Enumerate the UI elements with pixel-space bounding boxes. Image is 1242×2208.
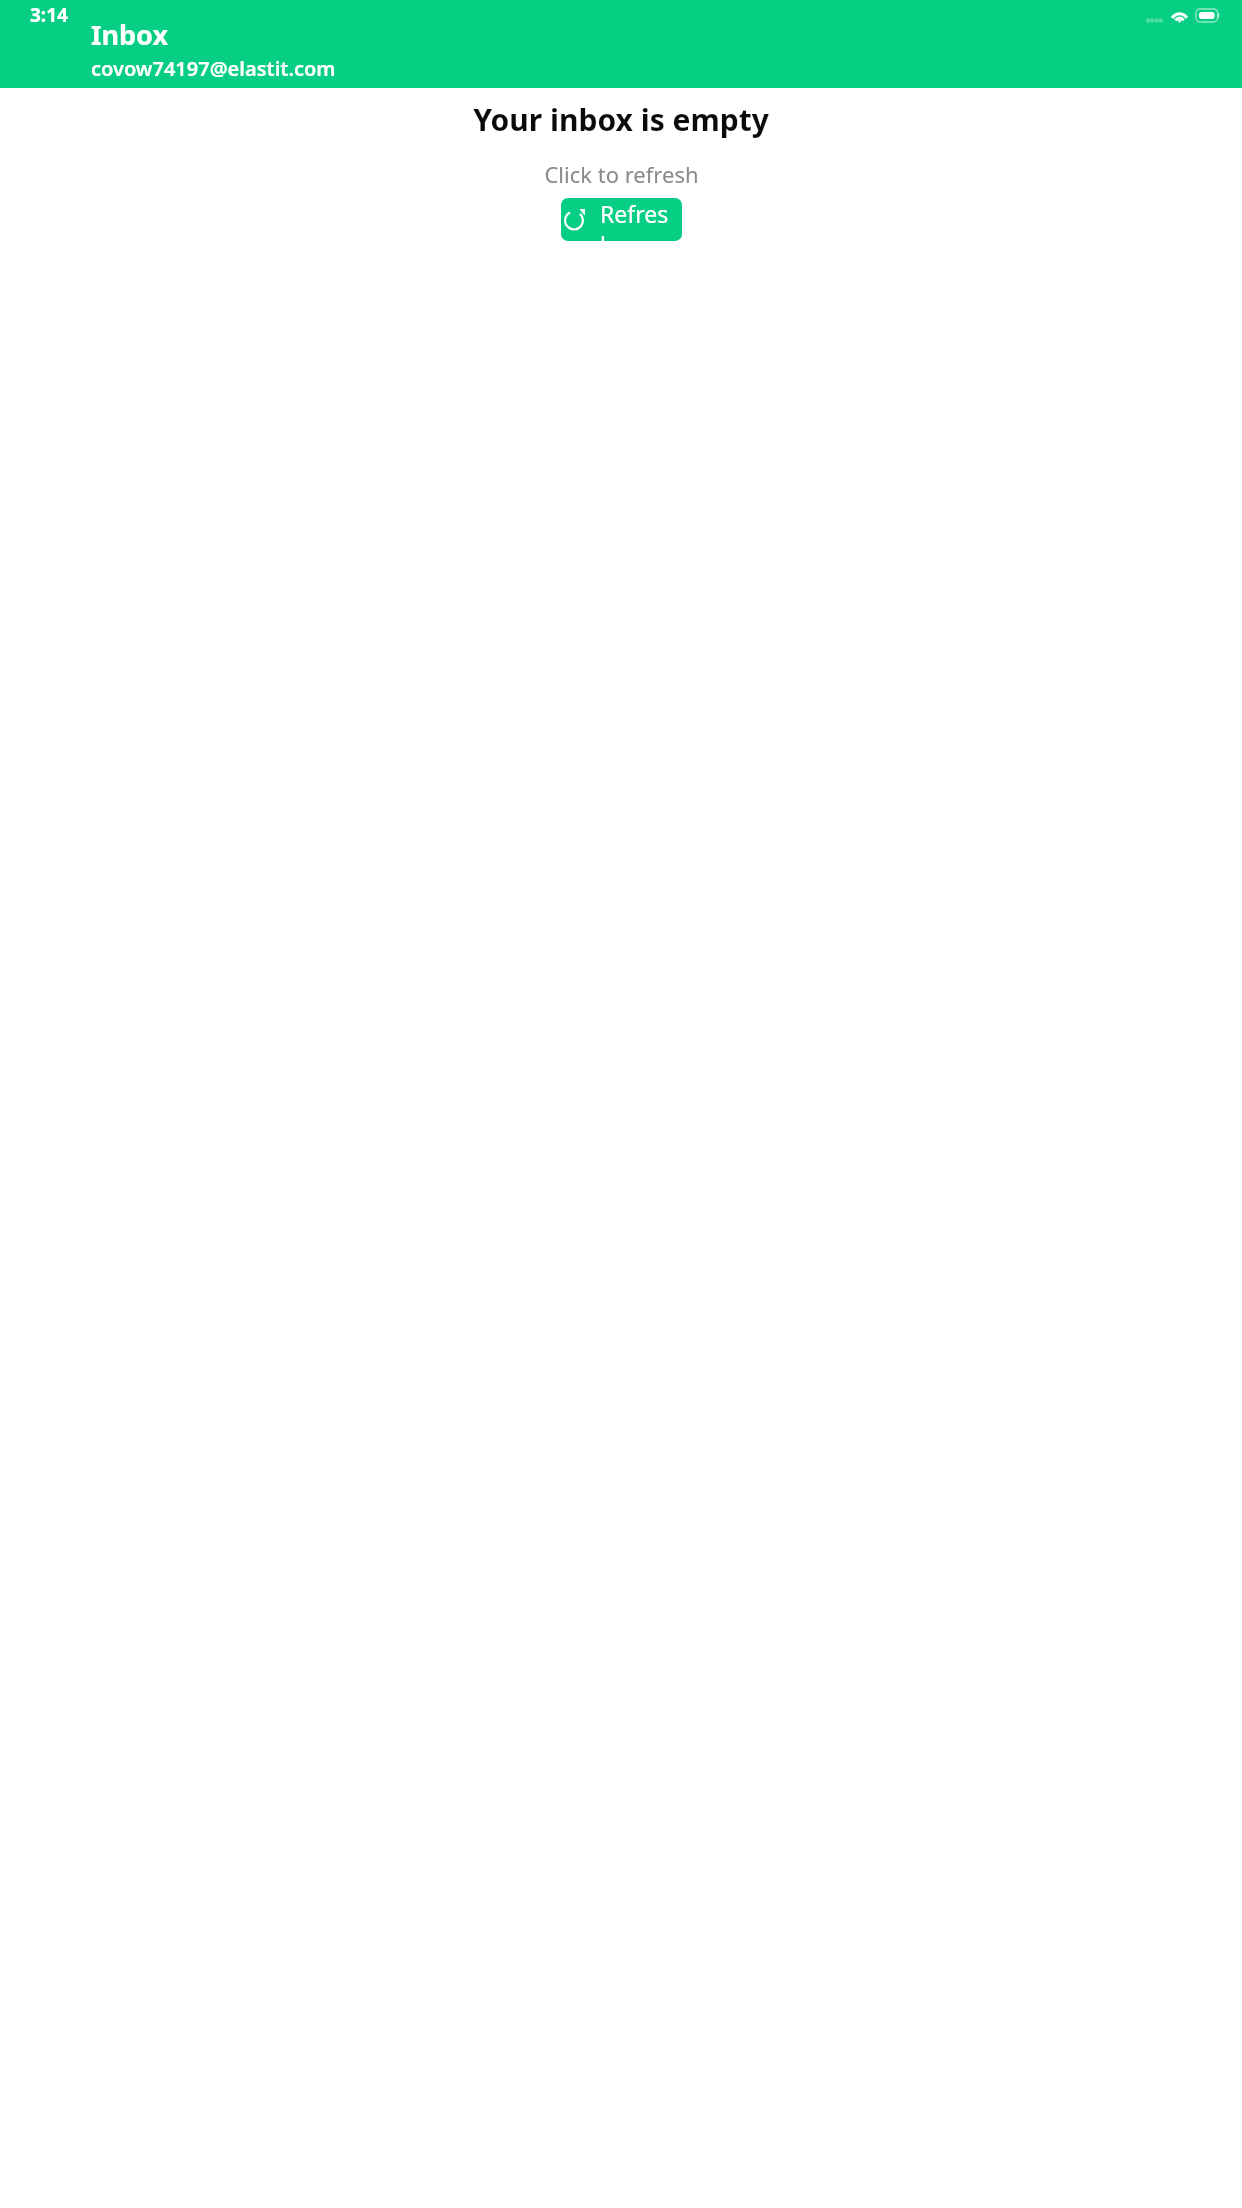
staticText: Your inbox is empty [473,99,769,140]
other: Refresh [561,207,587,233]
button[interactable]: Refresh [561,198,682,241]
staticText: 3:14 [30,2,68,28]
staticText: covow74197@elastit.com [91,55,336,82]
staticText: Click to refresh [544,159,699,189]
staticText: Refresh [600,198,682,241]
staticText: Inbox [91,16,169,53]
